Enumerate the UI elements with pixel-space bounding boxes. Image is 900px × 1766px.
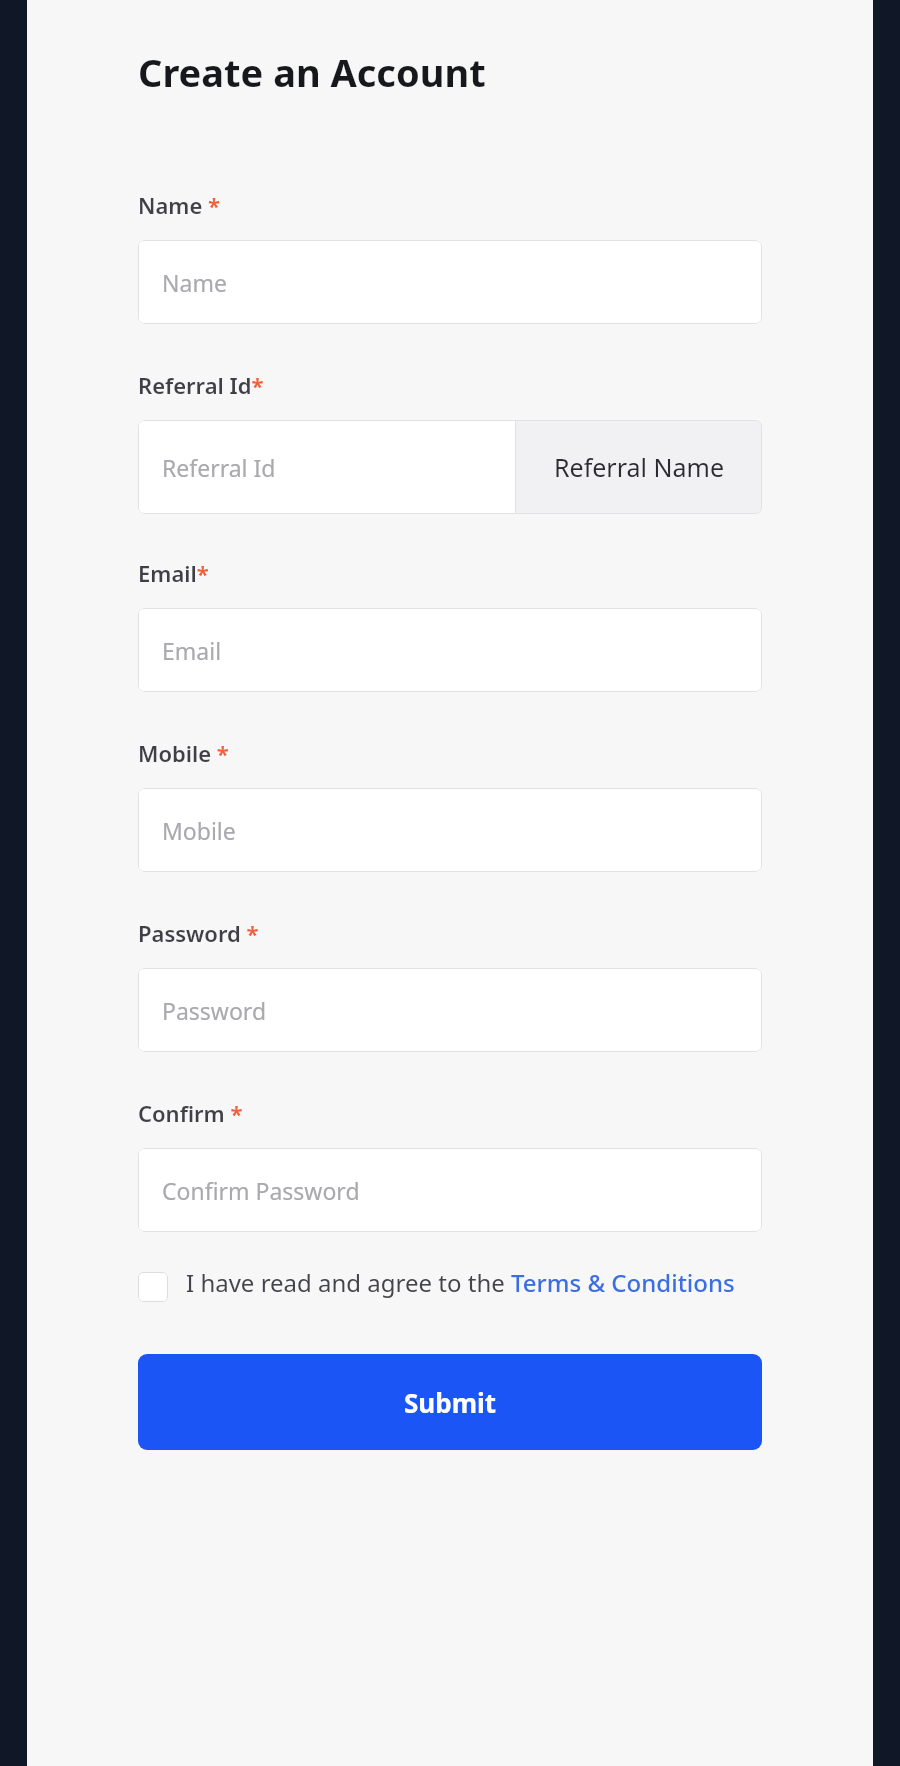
button[interactable]: Name: [138, 240, 762, 324]
staticText: Referral Name: [554, 450, 724, 484]
button[interactable]: Agree to Terms and Conditions: [138, 1266, 762, 1302]
button[interactable]: Submit: [138, 1354, 762, 1450]
other: Agree to Terms and Conditions: [138, 1272, 168, 1302]
button[interactable]: Referral Name: [516, 420, 762, 514]
staticText: I have read and agree to the Terms & Con…: [186, 1266, 735, 1299]
staticText: Create an Account: [138, 46, 486, 98]
staticText: Name *: [138, 190, 221, 220]
staticText: Submit: [404, 1385, 497, 1420]
button[interactable]: Referral Id: [138, 420, 515, 514]
button[interactable]: Mobile: [138, 788, 762, 872]
staticText: Password *: [138, 918, 259, 948]
staticText: Password: [162, 995, 267, 1026]
staticText: Confirm *: [138, 1098, 243, 1128]
staticText: Referral Id*: [138, 370, 264, 400]
button[interactable]: Password: [138, 968, 762, 1052]
staticText: Name: [162, 267, 227, 298]
staticText: Email*: [138, 558, 209, 588]
staticText: Mobile: [162, 815, 236, 846]
button[interactable]: Confirm Password: [138, 1148, 762, 1232]
button[interactable]: Email: [138, 608, 762, 692]
staticText: Confirm Password: [162, 1175, 360, 1206]
staticText: Referral Id: [162, 452, 276, 483]
staticText: Email: [162, 635, 222, 666]
staticText: Mobile *: [138, 738, 229, 768]
